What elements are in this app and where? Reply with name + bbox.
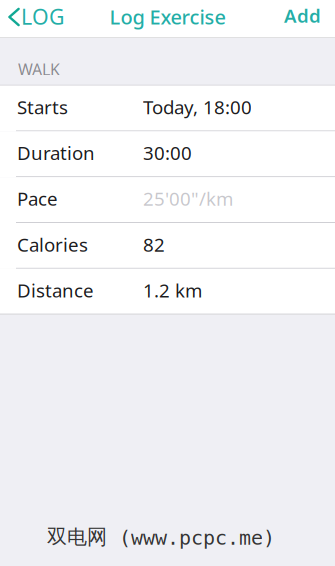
staticText: Distance (17, 278, 94, 303)
staticText: 25'00"/km (143, 186, 233, 211)
button[interactable]: Distance (0, 269, 335, 315)
button[interactable]: Starts (0, 86, 335, 131)
staticText: 30:00 (143, 140, 192, 165)
button[interactable]: Pace (0, 177, 335, 223)
staticText: Add (284, 3, 321, 28)
staticText: Calories (17, 232, 88, 257)
staticText: Pace (17, 186, 58, 211)
staticText: Log Exercise (109, 3, 225, 30)
staticText: Starts (17, 95, 68, 119)
button[interactable]: Duration (0, 131, 335, 177)
staticText: WALK (18, 59, 60, 80)
staticText: Duration (17, 140, 95, 165)
staticText: 1.2 km (143, 278, 202, 303)
button[interactable]: LOG (0, 0, 75, 34)
button[interactable]: Add (270, 0, 335, 34)
staticText: Today, 18:00 (143, 95, 252, 119)
staticText: LOG (21, 2, 65, 31)
staticText: 82 (143, 232, 165, 257)
staticText: 双电网 (www.pcpc.me) (47, 525, 275, 549)
button[interactable]: Calories (0, 223, 335, 269)
